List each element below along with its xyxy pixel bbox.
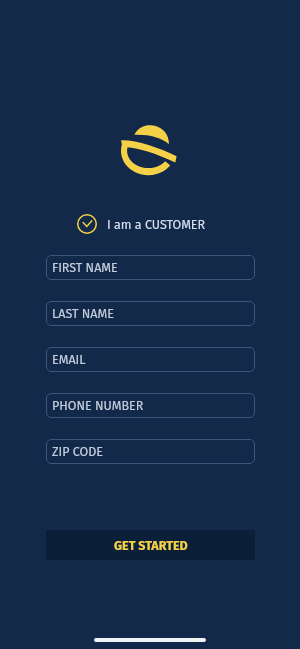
- staticText: PHONE NUMBER: [52, 398, 144, 413]
- staticText: EMAIL: [52, 352, 86, 367]
- button[interactable]: LAST NAME: [46, 301, 255, 326]
- button[interactable]: PHONE NUMBER: [46, 393, 255, 418]
- button[interactable]: ZIP CODE: [46, 439, 255, 464]
- button[interactable]: GET STARTED: [46, 530, 255, 560]
- button[interactable]: FIRST NAME: [46, 255, 255, 280]
- staticText: GET STARTED: [114, 538, 188, 553]
- staticText: ZIP CODE: [52, 444, 103, 459]
- staticText: FIRST NAME: [52, 260, 118, 275]
- staticText: I am a CUSTOMER: [107, 217, 206, 232]
- button[interactable]: EMAIL: [46, 347, 255, 372]
- staticText: LAST NAME: [52, 306, 114, 321]
- button[interactable]: I am a CUSTOMER: [77, 214, 206, 234]
